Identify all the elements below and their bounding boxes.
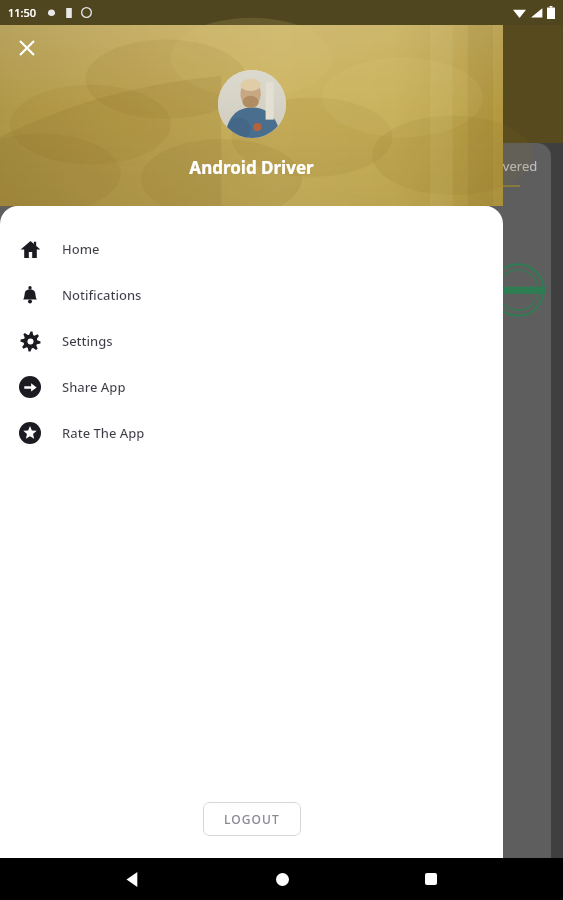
- staticText: Order Delivered: [440, 157, 538, 175]
- button[interactable]: LOGOUT: [203, 802, 301, 836]
- button[interactable]: Home: [0, 226, 503, 272]
- staticText: LOGOUT: [224, 811, 280, 827]
- staticText: Share App: [62, 378, 126, 396]
- button[interactable]: Recents: [414, 862, 448, 896]
- staticText: Items : 1: [440, 199, 493, 217]
- staticText: 11:50: [8, 5, 37, 20]
- staticText: Home: [62, 240, 100, 258]
- button[interactable]: Back: [115, 862, 149, 896]
- button[interactable]: Rate The App: [0, 410, 503, 456]
- staticText: Settings: [62, 332, 113, 350]
- button[interactable]: Notifications: [0, 272, 503, 318]
- staticText: Rate The App: [62, 424, 145, 442]
- button[interactable]: Profile photo: [218, 70, 286, 138]
- staticText: Notifications: [62, 286, 142, 304]
- button[interactable]: Home: [265, 862, 299, 896]
- button[interactable]: Share App: [0, 364, 503, 410]
- staticText: Android Driver: [189, 156, 314, 179]
- button[interactable]: Close: [12, 33, 42, 63]
- button[interactable]: Settings: [0, 318, 503, 364]
